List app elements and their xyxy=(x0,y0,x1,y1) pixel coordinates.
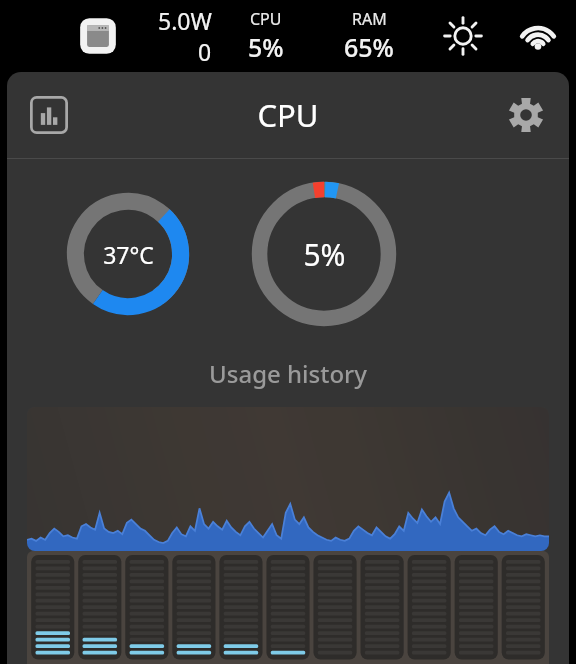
button[interactable]: CPU cores xyxy=(27,551,549,664)
staticText: RAM xyxy=(352,8,387,30)
button[interactable]: 5.0W xyxy=(158,5,212,67)
staticText: 5% xyxy=(303,234,346,275)
button[interactable]: Settings xyxy=(503,92,549,138)
button[interactable]: RAM xyxy=(344,8,394,64)
staticText: 37°C xyxy=(103,239,154,270)
staticText: Usage history xyxy=(209,357,367,390)
button[interactable]: 37°C xyxy=(65,191,191,317)
button[interactable]: 5% xyxy=(250,180,398,328)
staticText: 5.0W xyxy=(158,5,212,36)
button[interactable]: Wi-Fi xyxy=(514,12,562,60)
button[interactable] xyxy=(27,407,549,551)
button[interactable]: Brightness xyxy=(440,13,486,59)
button[interactable]: Charts xyxy=(27,93,71,137)
staticText: CPU xyxy=(250,8,282,30)
staticText: CPU xyxy=(257,94,319,136)
staticText: 65% xyxy=(344,30,394,64)
button[interactable]: CPU xyxy=(248,8,284,64)
staticText: 0 xyxy=(198,36,212,67)
button[interactable]: Windows xyxy=(76,14,120,58)
staticText: 5% xyxy=(248,30,284,64)
